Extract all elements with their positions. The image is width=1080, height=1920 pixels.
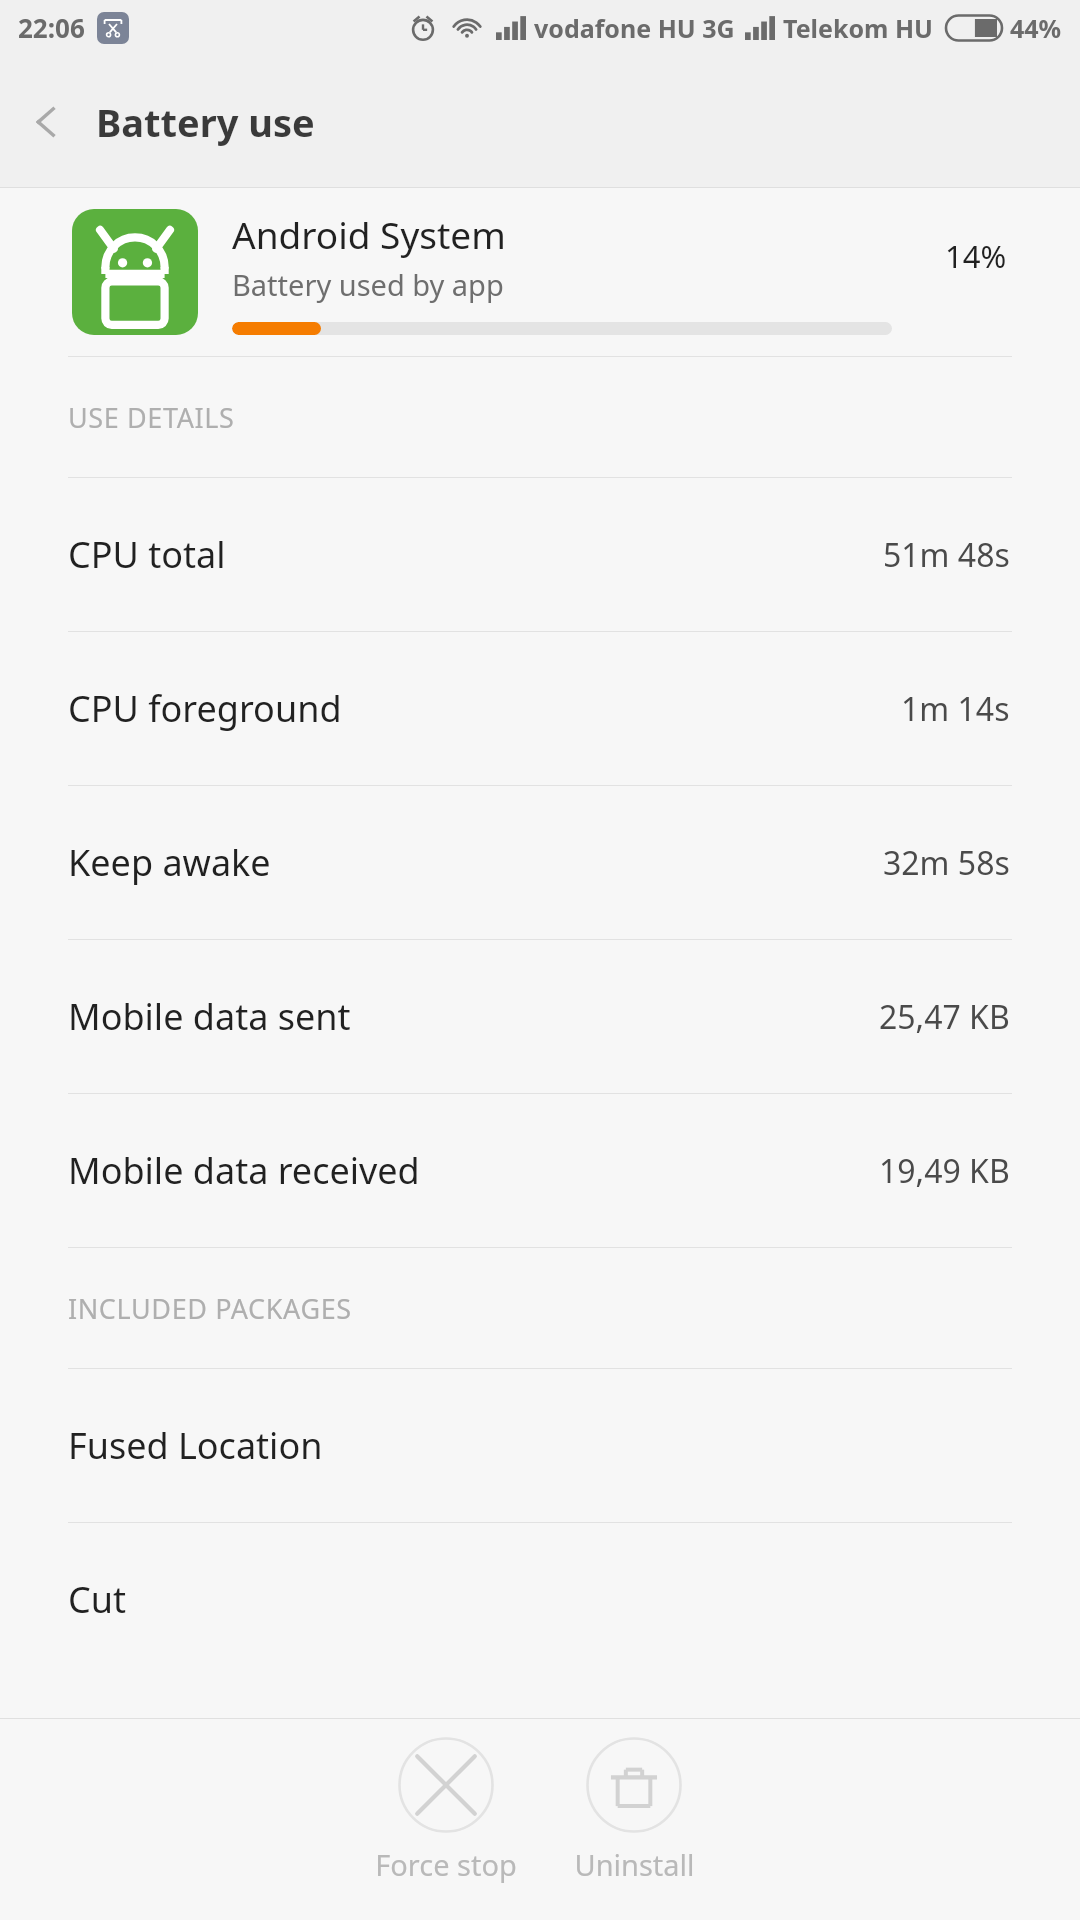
staticText: 32m 58s: [883, 841, 1010, 885]
staticText: CPU foreground: [68, 684, 885, 733]
button[interactable]: Back: [0, 55, 96, 188]
staticText: 44%: [1010, 11, 1062, 45]
button[interactable]: Fused Location: [0, 1369, 1080, 1522]
staticText: Force stop: [375, 1845, 517, 1884]
staticText: Keep awake: [68, 838, 867, 887]
staticText: Mobile data sent: [68, 992, 863, 1041]
button[interactable]: CPU total: [0, 478, 1080, 631]
button[interactable]: Mobile data received: [0, 1094, 1080, 1247]
button[interactable]: Uninstall: [544, 1719, 724, 1884]
staticText: USE DETAILS: [68, 399, 235, 436]
staticText: 22:06: [18, 10, 85, 45]
staticText: 25,47 KB: [879, 995, 1010, 1039]
button[interactable]: Cut: [0, 1523, 1080, 1676]
staticText: Mobile data received: [68, 1146, 863, 1195]
staticText: CPU total: [68, 530, 867, 579]
button[interactable]: Android System: [0, 188, 1080, 356]
staticText: Cut: [68, 1575, 1010, 1624]
staticText: Fused Location: [68, 1421, 1010, 1470]
staticText: 1m 14s: [901, 687, 1010, 731]
staticText: 19,49 KB: [879, 1149, 1010, 1193]
staticText: 51m 48s: [883, 533, 1010, 577]
staticText: vodafone HU 3G: [534, 11, 735, 45]
staticText: Battery used by app: [232, 265, 504, 304]
staticText: Battery use: [96, 96, 315, 148]
staticText: Android System: [232, 209, 506, 259]
staticText: 14%: [945, 235, 1007, 277]
button[interactable]: Force stop: [356, 1719, 536, 1884]
staticText: Uninstall: [574, 1845, 695, 1884]
staticText: INCLUDED PACKAGES: [68, 1290, 352, 1327]
button[interactable]: Keep awake: [0, 786, 1080, 939]
button[interactable]: CPU foreground: [0, 632, 1080, 785]
button[interactable]: Mobile data sent: [0, 940, 1080, 1093]
staticText: Telekom HU: [783, 11, 934, 45]
